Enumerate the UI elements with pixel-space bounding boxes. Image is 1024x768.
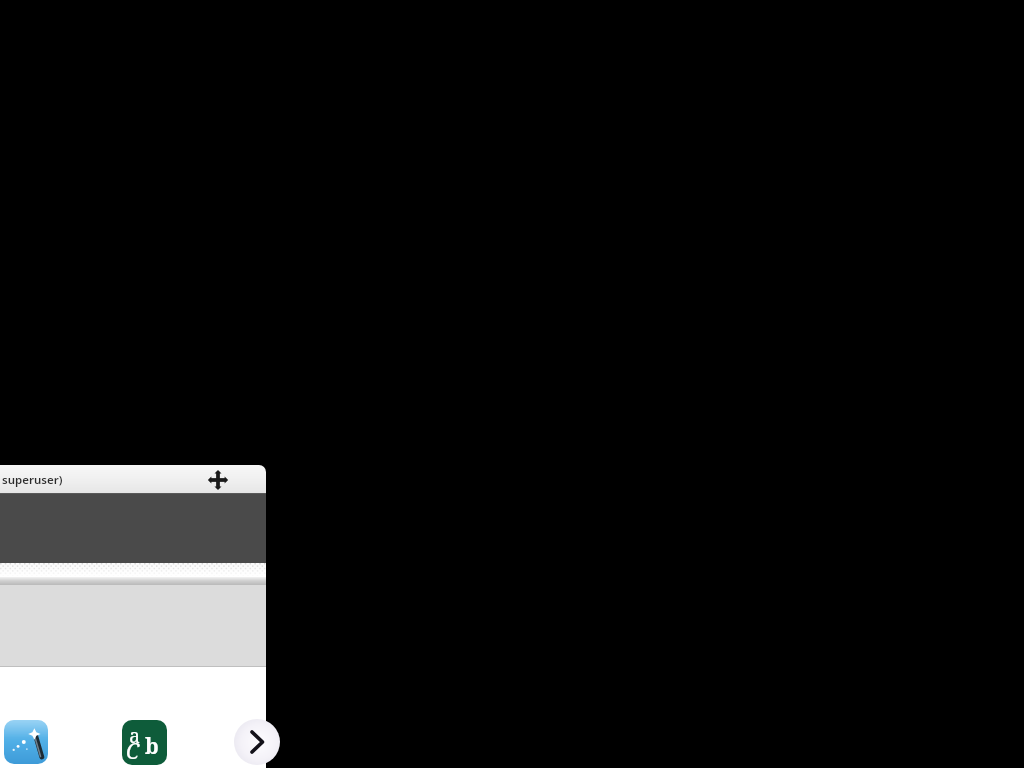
button[interactable]: Next xyxy=(234,717,284,767)
staticText: a xyxy=(129,723,140,749)
button[interactable]: Move window xyxy=(207,469,229,491)
staticText: superuser) xyxy=(2,472,63,488)
button[interactable]: Dictionary xyxy=(122,720,167,765)
staticText: C xyxy=(126,737,140,765)
button[interactable]: Magic wand xyxy=(4,720,48,764)
staticText: b xyxy=(145,732,159,761)
button[interactable] xyxy=(0,585,266,667)
button[interactable] xyxy=(0,465,266,493)
